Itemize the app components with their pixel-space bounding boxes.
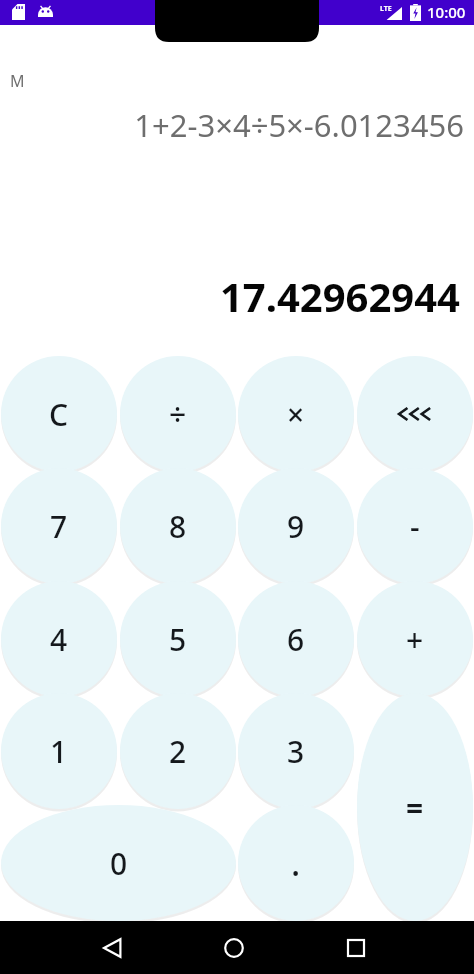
staticText: 1+2-3×4÷5×-6.0123456 [0,104,464,146]
staticText: - [410,506,420,547]
button[interactable]: 2 [120,693,236,809]
staticText: 5 [169,619,187,660]
button[interactable]: Recent apps [332,924,380,972]
staticText: M [10,70,25,92]
button[interactable]: Decimal point [238,805,354,921]
button[interactable]: 7 [1,468,117,584]
button[interactable]: 6 [238,581,354,697]
staticText: 10:00 [427,2,466,22]
staticText: 17.42962944 [0,269,460,323]
button[interactable]: 3 [238,693,354,809]
staticText: × [287,394,305,435]
staticText: 0 [110,843,128,884]
staticText: . [291,840,301,886]
button[interactable]: 1 [1,693,117,809]
button[interactable]: Equals [357,693,473,921]
staticText: = [406,787,424,828]
staticText: 9 [287,506,305,547]
button[interactable]: Home [210,924,258,972]
button[interactable]: 8 [120,468,236,584]
button[interactable]: Backspace [357,356,473,472]
button[interactable]: 9 [238,468,354,584]
button[interactable]: Plus [357,581,473,697]
staticText: 2 [169,731,187,772]
button[interactable]: Back [88,924,136,972]
button[interactable]: 4 [1,581,117,697]
staticText: 8 [169,506,187,547]
button[interactable]: Multiply [238,356,354,472]
staticText: 3 [287,731,305,772]
button[interactable]: 5 [120,581,236,697]
button[interactable]: 0 [1,805,236,921]
staticText: C [49,394,69,435]
staticText: 4 [50,619,68,660]
staticText: + [406,619,424,660]
button[interactable]: Clear [1,356,117,472]
button[interactable]: Divide [120,356,236,472]
staticText: 1 [50,731,68,772]
button[interactable]: Minus [357,468,473,584]
staticText: 6 [287,619,305,660]
staticText: 7 [50,506,68,547]
staticText: ÷ [169,394,187,435]
staticText: LTE [380,4,392,14]
